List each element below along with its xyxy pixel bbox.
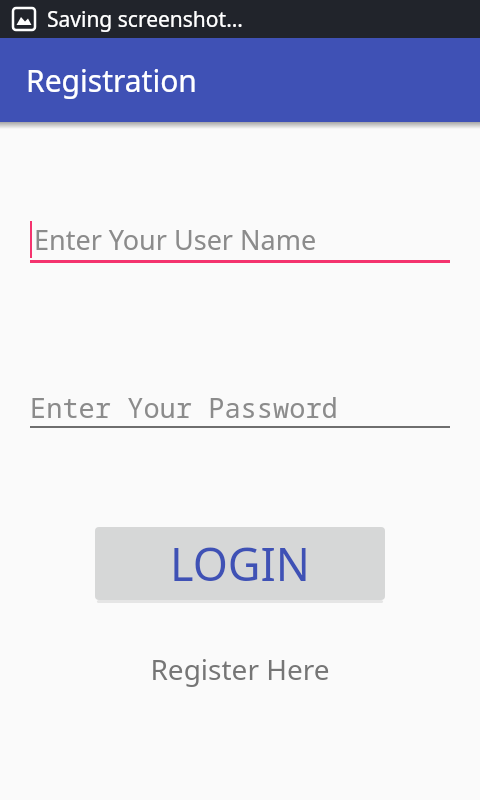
- staticText: Enter Your Password: [30, 389, 338, 426]
- staticText: Registration: [26, 60, 197, 101]
- button[interactable]: Register Here: [150, 650, 330, 688]
- staticText: LOGIN: [170, 533, 311, 594]
- button[interactable]: LOGIN: [95, 527, 385, 600]
- staticText: Saving screenshot…: [47, 5, 243, 34]
- button[interactable]: Enter Your Password: [30, 380, 450, 428]
- button[interactable]: Enter Your User Name: [30, 210, 450, 263]
- staticText: Enter Your User Name: [34, 221, 317, 258]
